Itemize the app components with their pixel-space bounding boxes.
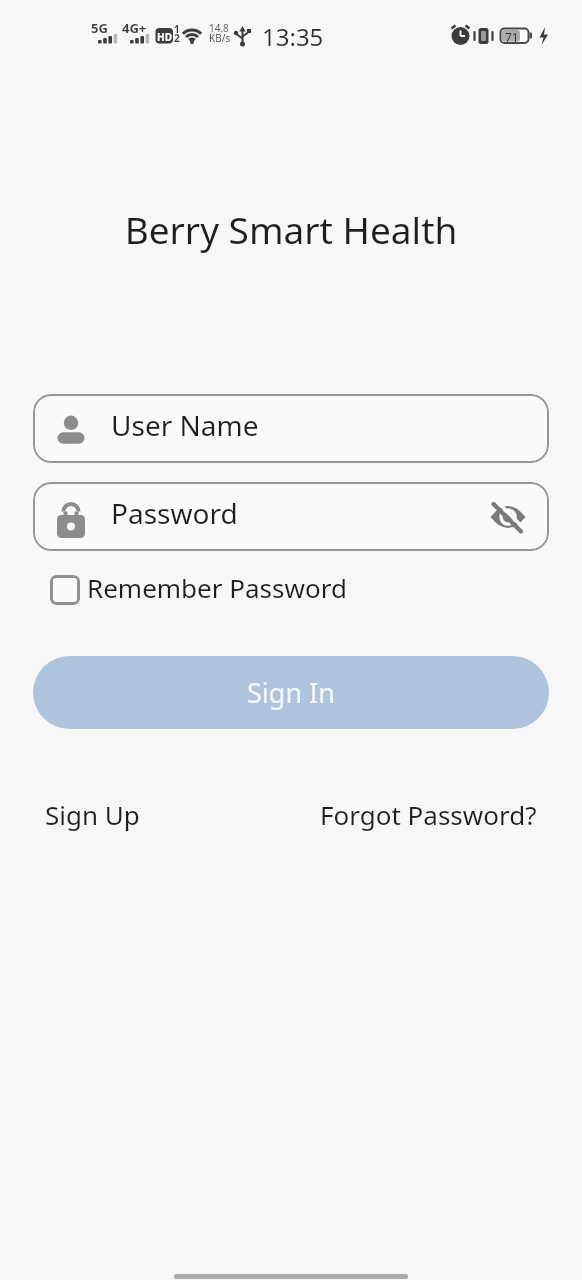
button[interactable]: Sign In	[33, 656, 549, 729]
staticText: KB/s	[209, 31, 231, 45]
staticText: 1	[174, 22, 180, 36]
button[interactable]: Sign Up	[45, 797, 140, 832]
button[interactable]	[489, 498, 527, 536]
button[interactable]: Remember Password	[50, 575, 347, 605]
staticText: 2	[174, 31, 180, 45]
staticText: 5G	[91, 19, 108, 37]
button[interactable]: Password	[33, 482, 549, 551]
button[interactable]: Forgot Password?	[320, 797, 537, 832]
staticText: User Name	[111, 406, 259, 444]
staticText: 13:35	[262, 20, 324, 53]
staticText: 14.8	[209, 21, 229, 35]
staticText: Sign In	[247, 674, 335, 711]
staticText: HD	[157, 30, 172, 44]
staticText: Remember Password	[87, 570, 347, 600]
staticText: Berry Smart Health	[0, 204, 582, 254]
button[interactable]: User Name	[33, 394, 549, 463]
staticText: 71	[505, 29, 519, 45]
staticText: 4G+	[122, 19, 147, 37]
staticText: Password	[111, 494, 238, 532]
